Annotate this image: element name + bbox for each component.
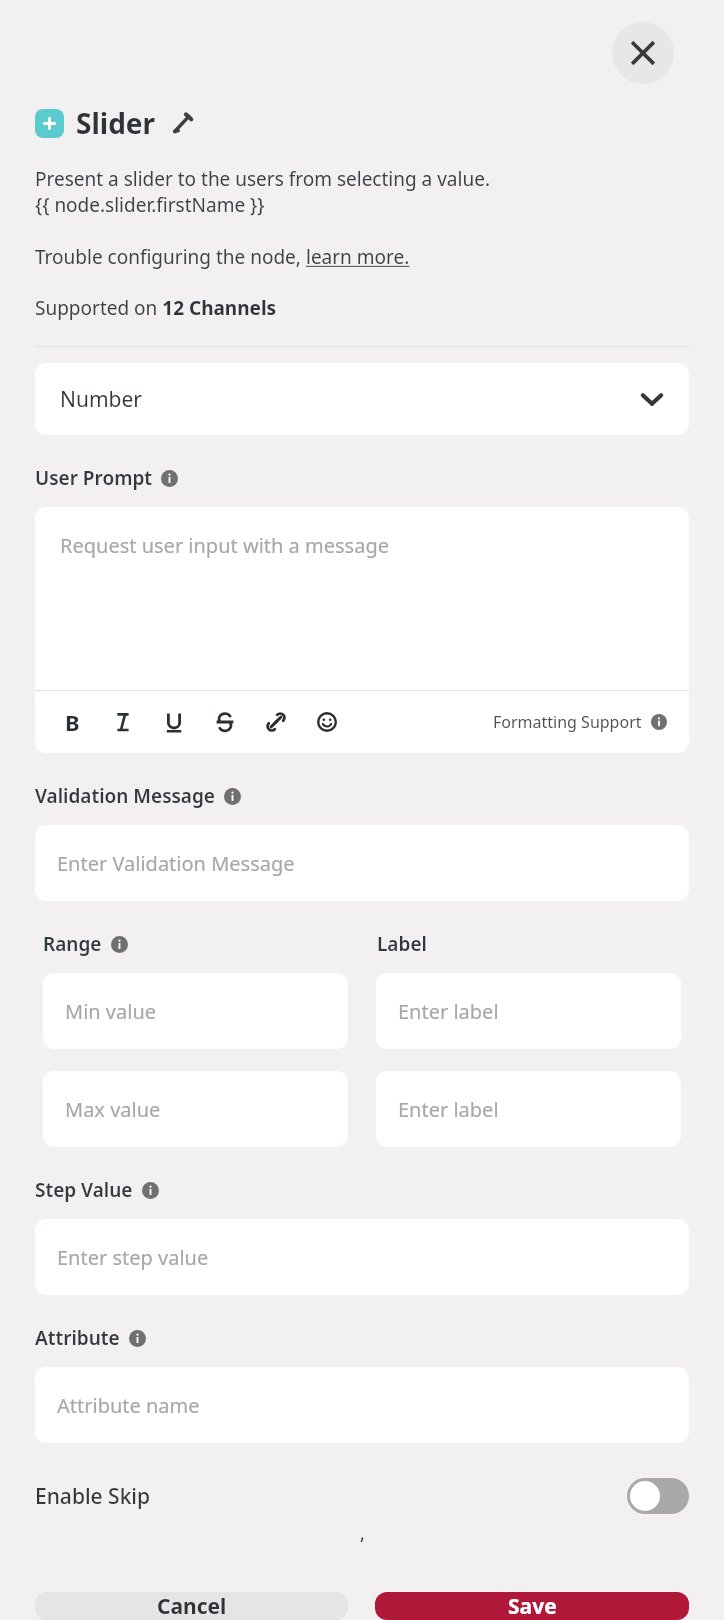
staticText: Attribute [35,1325,120,1351]
button[interactable]: Enter label [376,1071,681,1147]
button[interactable]: Enter Validation Message [35,825,689,901]
button[interactable]: Formatting Support [493,711,667,733]
button[interactable]: Enable Skip toggle [627,1478,689,1514]
button[interactable]: Close [612,22,674,84]
button[interactable]: Number [35,363,689,435]
button[interactable]: Insert link [261,707,291,737]
button[interactable]: Italic [108,707,138,737]
button[interactable]: Min value [43,973,348,1049]
staticText: learn more. [306,244,410,270]
staticText: Label [377,931,427,957]
button[interactable]: Request user input with a message [35,507,689,690]
staticText: Enter label [398,998,499,1025]
staticText: Number [60,385,143,414]
staticText: Min value [65,998,157,1025]
button[interactable]: Enter step value [35,1219,689,1295]
button[interactable]: Enter label [376,973,681,1049]
staticText: Attribute name [57,1392,200,1419]
button[interactable]: Underline [159,707,189,737]
button[interactable]: Edit name [170,111,194,135]
staticText: , [360,1521,365,1546]
staticText: Step Value [35,1177,133,1203]
staticText: Cancel [157,1592,227,1620]
staticText: Enter Validation Message [57,850,295,877]
staticText: Range [43,931,102,957]
button[interactable]: Cancel [35,1592,348,1620]
staticText: Formatting Support [493,711,642,733]
staticText: User Prompt [35,465,152,491]
staticText: Enable Skip [35,1482,151,1511]
button[interactable]: Strikethrough [210,707,240,737]
button[interactable]: Save [375,1592,689,1620]
staticText: B [65,707,80,737]
button[interactable]: Emoji [312,707,342,737]
staticText: Supported on 12 Channels [35,295,277,321]
staticText: Save [508,1592,557,1620]
button[interactable]: Attribute name [35,1367,689,1443]
staticText: Slider [76,104,156,142]
staticText: Request user input with a message [60,532,389,559]
staticText: Enter label [398,1096,499,1123]
button[interactable]: Bold [57,707,87,737]
staticText: Present a slider to the users from selec… [35,166,696,218]
staticText: Validation Message [35,783,215,809]
button[interactable]: Max value [43,1071,348,1147]
staticText: Enter step value [57,1244,209,1271]
staticText: Max value [65,1096,161,1123]
button[interactable]: learn more. [306,244,410,270]
staticText: Trouble configuring the node, [35,244,306,270]
